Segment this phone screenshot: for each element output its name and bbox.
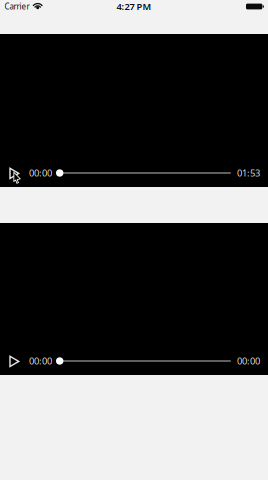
staticText: 01:53 xyxy=(237,167,260,179)
staticText: 00:00 xyxy=(29,167,52,179)
staticText: 00:00 xyxy=(29,355,52,367)
staticText: Carrier xyxy=(4,1,29,12)
button[interactable]: Play xyxy=(8,353,24,369)
staticText: 00:00 xyxy=(237,355,260,367)
staticText: 4:27 PM xyxy=(116,0,151,13)
button[interactable]: Play xyxy=(8,165,24,181)
